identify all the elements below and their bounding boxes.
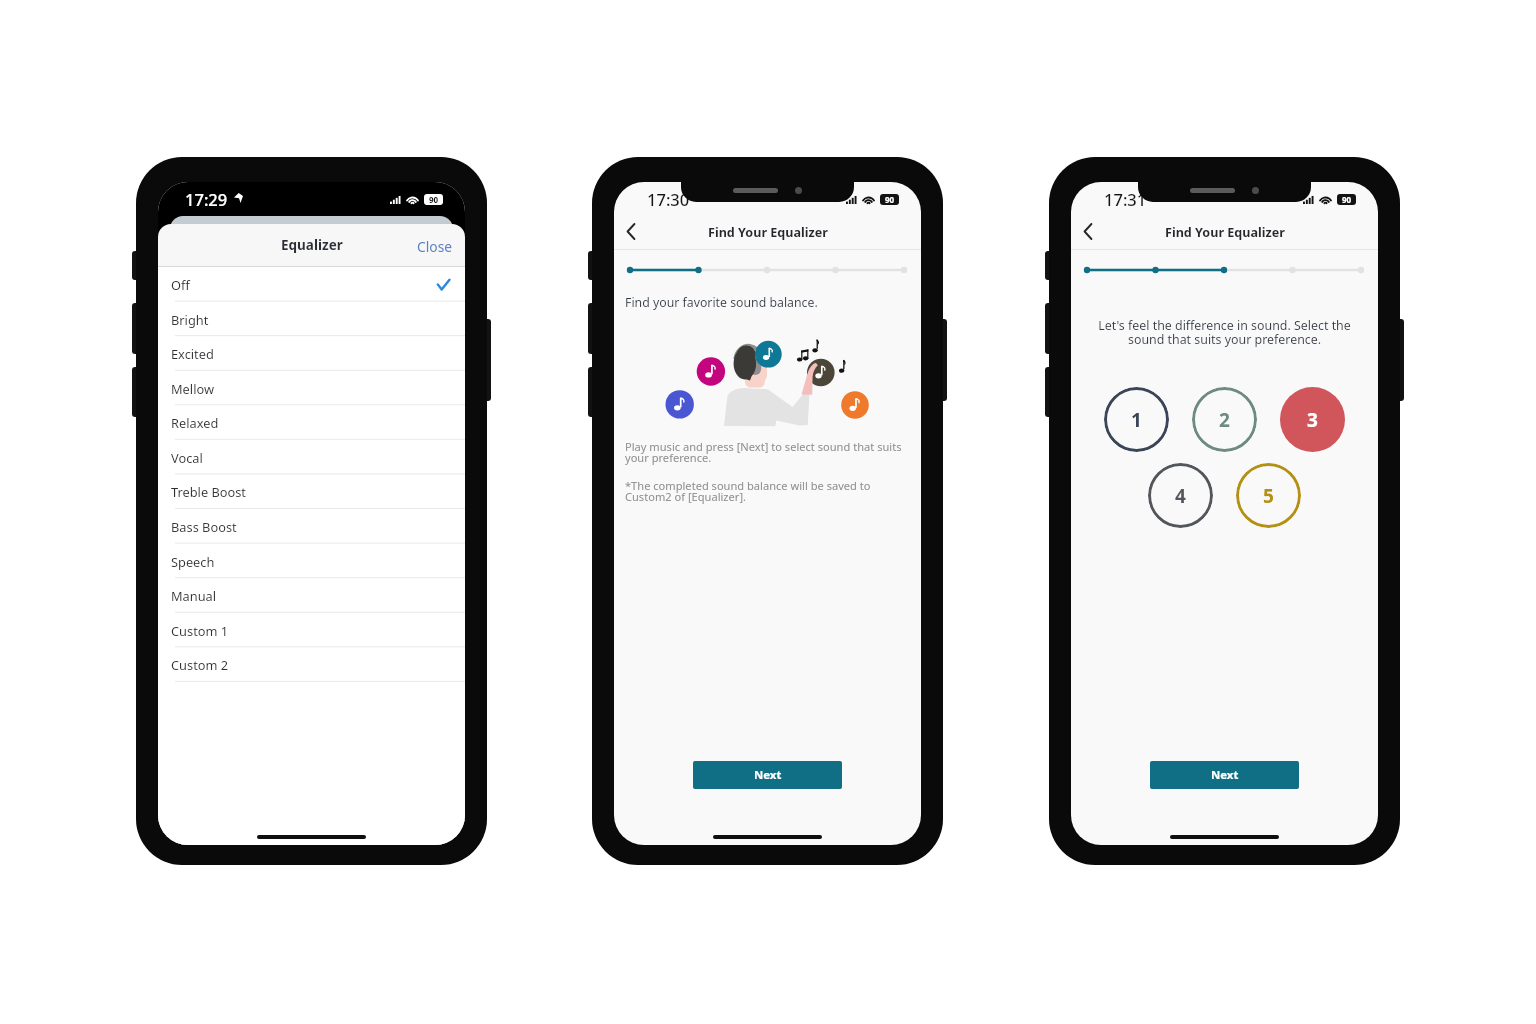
staticText: Vocal [171, 449, 203, 466]
button[interactable]: Back [614, 213, 646, 246]
staticText: 3 [1307, 407, 1318, 433]
staticText: Treble Boost [171, 483, 246, 500]
staticText: 17:31 [1104, 188, 1147, 206]
button[interactable]: Off [158, 267, 465, 302]
staticText: Find Your Equalizer [1165, 224, 1285, 241]
staticText: Find your favorite sound balance. [625, 294, 818, 311]
staticText: Equalizer [281, 236, 343, 254]
button[interactable]: Next [1150, 761, 1299, 789]
staticText: Off [171, 276, 190, 293]
staticText: 90 [885, 194, 895, 205]
staticText: 1 [1131, 407, 1142, 433]
staticText: Speech [171, 553, 215, 570]
staticText: 5 [1263, 483, 1274, 509]
button[interactable]: Treble Boost [158, 474, 465, 509]
button[interactable]: Next [693, 761, 842, 789]
button[interactable]: Manual [158, 578, 465, 613]
staticText: Manual [171, 587, 217, 604]
staticText: Bass Boost [171, 518, 237, 535]
button[interactable]: 1 [1104, 387, 1169, 452]
staticText: 17:29 [185, 188, 228, 206]
staticText: Relaxed [171, 414, 219, 431]
staticText: Excited [171, 345, 214, 362]
staticText: Next [1211, 767, 1239, 783]
staticText: Find Your Equalizer [708, 224, 828, 241]
staticText: 90 [1342, 194, 1352, 205]
staticText: Bright [171, 311, 209, 328]
button[interactable]: Custom 1 [158, 613, 465, 648]
staticText: Let's feel the difference in sound. Sele… [1077, 317, 1372, 347]
button[interactable]: Excited [158, 336, 465, 371]
staticText: 4 [1175, 483, 1186, 509]
button[interactable]: Relaxed [158, 405, 465, 440]
staticText: Custom 1 [171, 622, 229, 639]
staticText: Mellow [171, 380, 214, 397]
button[interactable]: Speech [158, 544, 465, 579]
staticText: Close [417, 237, 453, 256]
button[interactable]: Back [1071, 213, 1103, 246]
staticText: Next [754, 767, 782, 783]
button[interactable]: 5 [1236, 463, 1301, 528]
button[interactable]: 3 [1280, 387, 1345, 452]
button[interactable]: Mellow [158, 371, 465, 406]
staticText: 2 [1219, 407, 1230, 433]
button[interactable]: Bass Boost [158, 509, 465, 544]
button[interactable]: 4 [1148, 463, 1213, 528]
button[interactable]: Vocal [158, 440, 465, 475]
staticText: Play music and press [Next] to select so… [625, 439, 921, 466]
button[interactable]: 2 [1192, 387, 1257, 452]
button[interactable]: Custom 2 [158, 647, 465, 682]
staticText: 90 [429, 194, 439, 205]
staticText: *The completed sound balance will be sav… [625, 478, 921, 505]
button[interactable]: Close [404, 227, 465, 266]
staticText: 17:30 [647, 188, 690, 206]
staticText: Custom 2 [171, 656, 229, 673]
button[interactable]: Bright [158, 302, 465, 337]
